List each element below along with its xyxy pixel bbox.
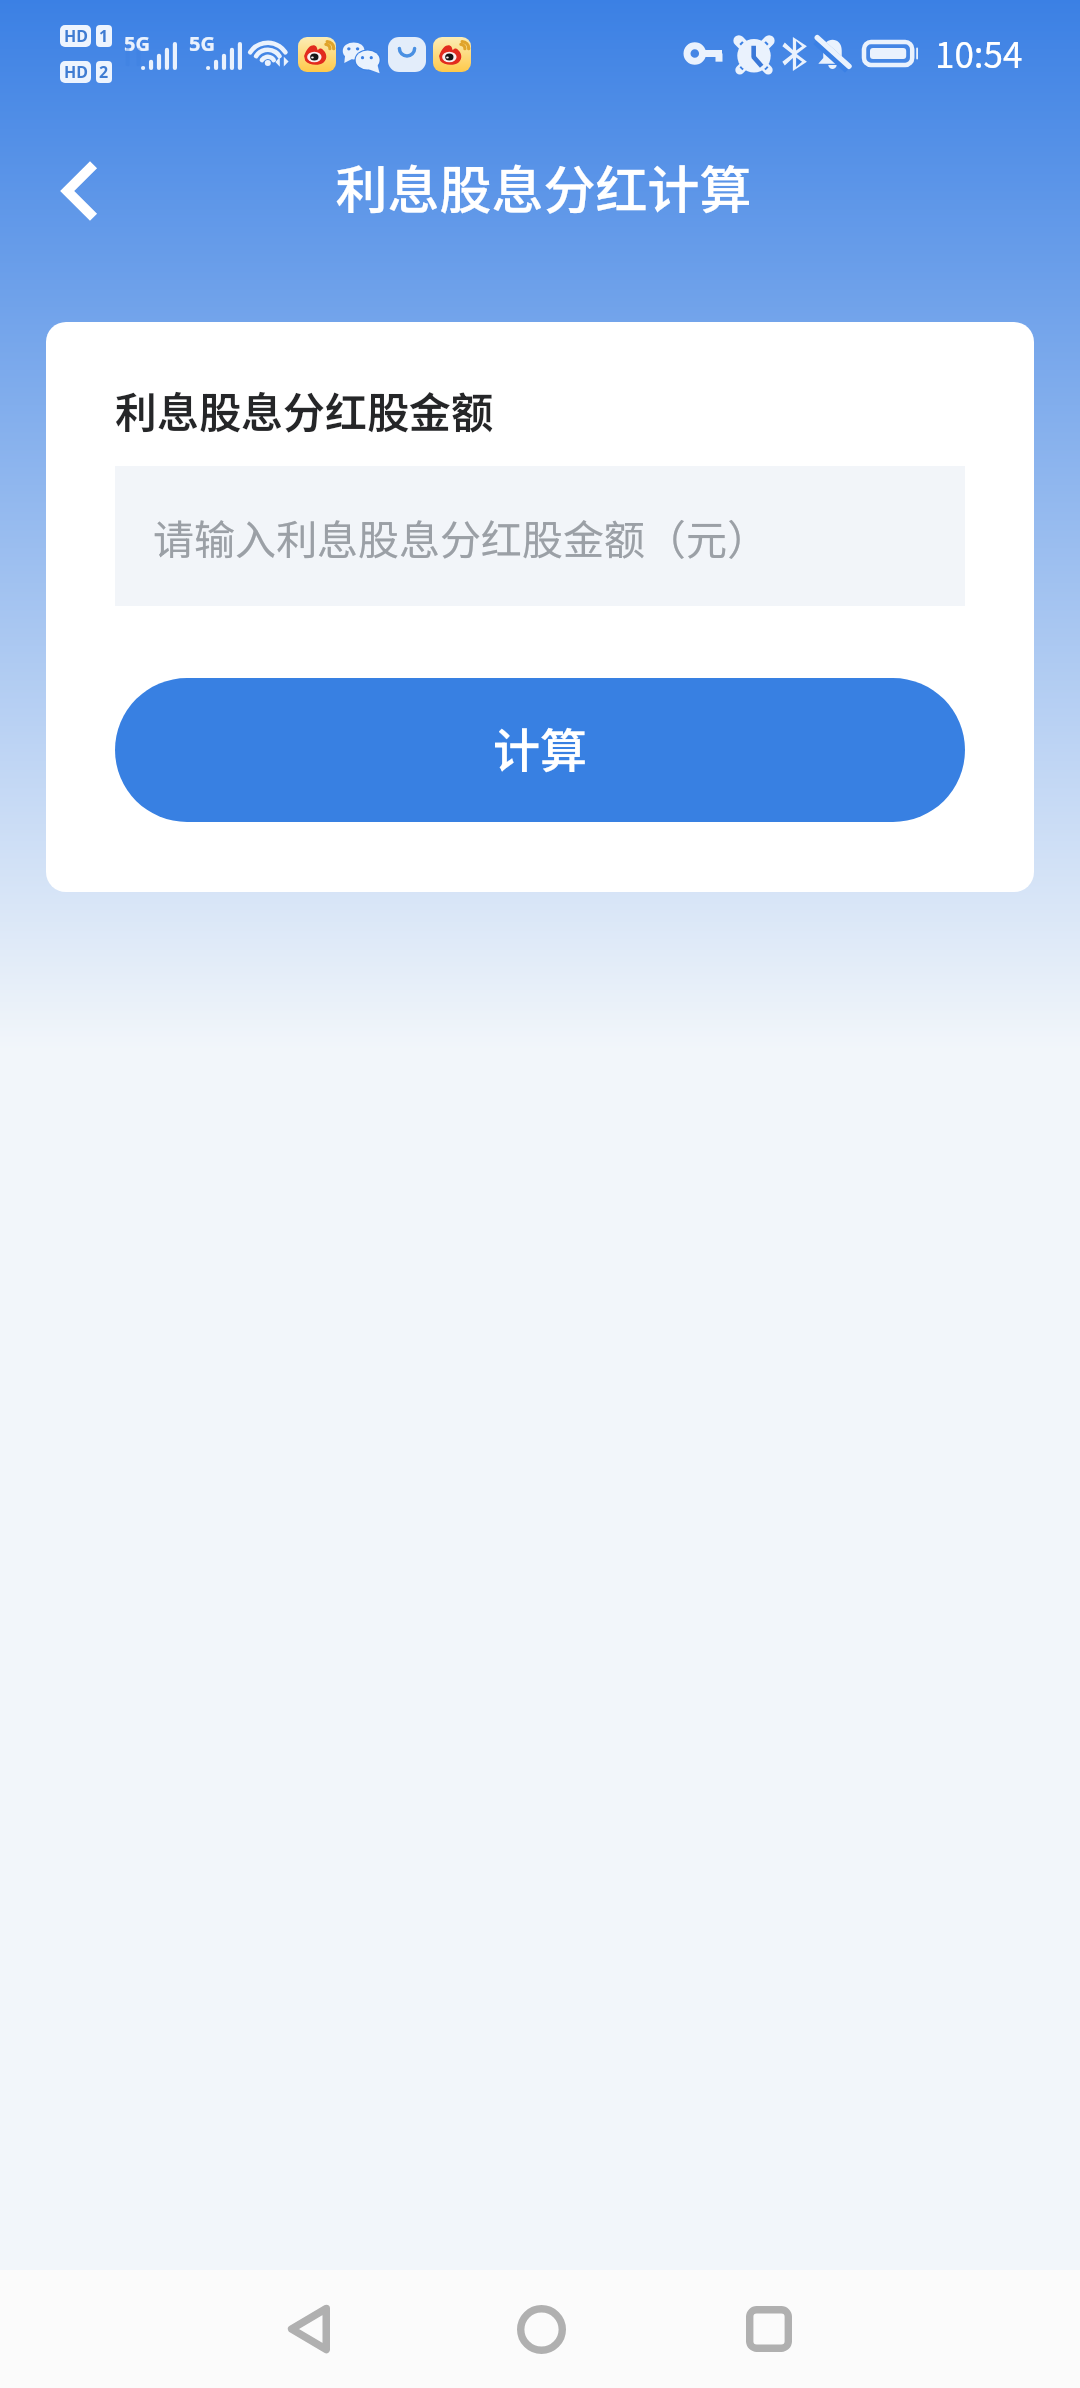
staticText: HD — [64, 61, 88, 83]
button[interactable]: 计算 — [115, 678, 965, 822]
button[interactable]: Back — [248, 2270, 368, 2388]
staticText: 利息股息分红计算 — [335, 149, 752, 224]
button[interactable]: Home — [481, 2270, 601, 2388]
button[interactable]: Recents — [709, 2270, 829, 2388]
button[interactable]: 请输入利息股息分红股金额（元） — [115, 466, 965, 606]
staticText: HD — [64, 25, 88, 47]
staticText: 10:54 — [935, 27, 1023, 78]
staticText: 5G — [189, 30, 215, 57]
button[interactable]: Back — [26, 131, 126, 241]
staticText: 请输入利息股息分红股金额（元） — [153, 507, 768, 566]
staticText: 利息股息分红股金额 — [115, 379, 494, 440]
staticText: 计算 — [493, 713, 587, 781]
staticText: 1 — [99, 25, 109, 47]
staticText: 2 — [99, 61, 109, 83]
staticText: 5G — [124, 30, 150, 57]
